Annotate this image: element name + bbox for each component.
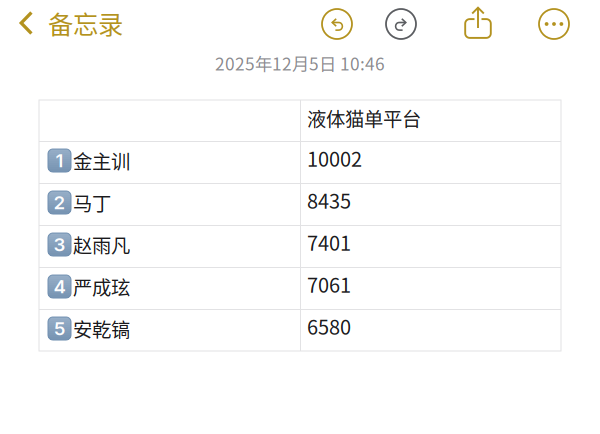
staticText: 7061 [307, 269, 351, 298]
staticText: 6580 [307, 311, 351, 340]
staticText: 赵雨凡 [73, 230, 130, 258]
button[interactable]: More [537, 0, 571, 46]
button[interactable]: Share [461, 0, 495, 46]
staticText: 3 [53, 233, 65, 256]
staticText: 2 [53, 191, 65, 214]
staticText: 1 [55, 149, 63, 172]
staticText: 4 [53, 275, 65, 298]
staticText: 液体猫单平台 [307, 104, 421, 132]
staticText: 金主训 [73, 146, 130, 174]
staticText: 安乾镐 [73, 314, 130, 342]
staticText: 5 [54, 317, 65, 340]
staticText: 严成玹 [73, 272, 130, 300]
staticText: 备忘录 [48, 5, 123, 41]
button[interactable]: 备忘录 [0, 1, 133, 45]
button[interactable]: Redo [384, 0, 418, 46]
staticText: 7401 [307, 227, 351, 256]
staticText: 马丁 [73, 188, 111, 216]
staticText: 2025年12月5日 10:46 [215, 50, 385, 76]
staticText: 10002 [307, 143, 362, 172]
button[interactable]: Undo [320, 0, 354, 46]
staticText: 8435 [307, 185, 351, 214]
